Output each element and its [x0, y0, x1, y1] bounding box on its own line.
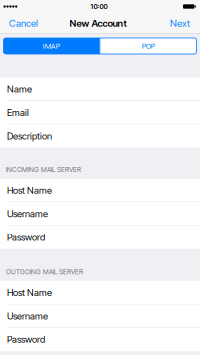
button[interactable]: Cancel	[0, 13, 44, 33]
staticText: Password	[7, 334, 45, 345]
staticText: New Account	[69, 17, 126, 29]
button[interactable]: Next	[164, 13, 200, 33]
staticText: Username	[7, 208, 48, 219]
button[interactable]: Username	[0, 304, 200, 328]
staticText: INCOMING MAIL SERVER	[6, 166, 81, 174]
button[interactable]: IMAP	[3, 38, 99, 54]
staticText: Username	[7, 310, 48, 322]
staticText: Name	[7, 84, 32, 95]
button[interactable]: Name	[0, 77, 200, 101]
button[interactable]: POP	[100, 38, 196, 54]
staticText: Next	[170, 17, 190, 29]
staticText: Host Name	[7, 185, 52, 196]
staticText: Description	[7, 130, 52, 142]
button[interactable]: Username	[0, 202, 200, 225]
button[interactable]: Description	[0, 124, 200, 148]
staticText: Email	[7, 107, 29, 118]
staticText: Password	[7, 232, 45, 243]
staticText: Cancel	[9, 17, 38, 29]
button[interactable]: Host Name	[0, 179, 200, 202]
staticText: IMAP	[43, 41, 60, 50]
button[interactable]: Email	[0, 101, 200, 124]
button[interactable]: Password	[0, 328, 200, 351]
button[interactable]: Host Name	[0, 281, 200, 304]
staticText: POP	[142, 41, 155, 50]
staticText: OUTGOING MAIL SERVER	[6, 268, 83, 276]
staticText: 10:00	[90, 2, 107, 11]
button[interactable]: Password	[0, 225, 200, 249]
staticText: Host Name	[7, 287, 52, 298]
